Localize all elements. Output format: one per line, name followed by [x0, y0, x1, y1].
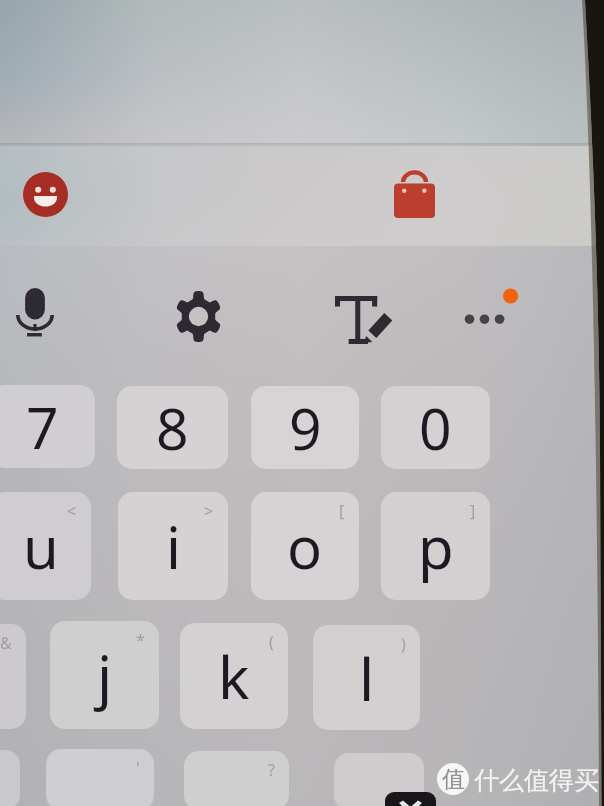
staticText: ) — [401, 633, 406, 655]
button[interactable]: Handwriting — [327, 286, 399, 358]
staticText: & — [0, 632, 12, 654]
staticText: 0 — [419, 389, 452, 467]
button[interactable]: ' — [46, 749, 154, 806]
staticText: l — [359, 638, 375, 718]
button[interactable]: ] — [381, 492, 490, 600]
staticText: u — [23, 507, 59, 586]
button[interactable]: More options — [455, 282, 525, 352]
button[interactable] — [0, 750, 20, 806]
staticText: * — [136, 629, 145, 651]
button[interactable]: 0 — [381, 386, 490, 469]
button[interactable]: [ — [251, 492, 359, 600]
staticText: 9 — [289, 389, 322, 467]
staticText: > — [204, 500, 214, 522]
staticText: 7 — [26, 388, 59, 466]
button[interactable]: ( — [180, 623, 288, 729]
staticText: ? — [268, 759, 275, 781]
staticText: 值 — [442, 765, 465, 794]
button[interactable]: 7 — [0, 385, 95, 468]
staticText: k — [218, 636, 250, 716]
button[interactable]: > — [118, 492, 228, 600]
staticText: ( — [269, 631, 274, 653]
button[interactable]: * — [50, 621, 159, 729]
button[interactable]: & — [0, 624, 26, 729]
button[interactable]: ) — [313, 625, 420, 730]
button[interactable]: Emoji — [15, 164, 76, 225]
staticText: 什么值得买 — [474, 765, 599, 796]
button[interactable]: ? — [184, 751, 289, 806]
button[interactable]: Shopping — [386, 164, 447, 225]
staticText: o — [287, 507, 323, 586]
staticText: p — [418, 507, 454, 586]
staticText: j — [97, 635, 113, 715]
button[interactable]: 8 — [117, 386, 228, 469]
button[interactable]: 9 — [251, 386, 359, 469]
staticText: ' — [136, 757, 140, 779]
staticText: < — [67, 500, 77, 522]
button[interactable]: Voice input — [6, 278, 70, 342]
staticText: ] — [470, 500, 476, 522]
button[interactable]: Shift — [385, 792, 436, 806]
staticText: [ — [339, 500, 345, 522]
staticText: i — [166, 507, 181, 586]
button[interactable]: Settings — [167, 281, 231, 345]
button[interactable] — [334, 753, 424, 806]
staticText: 8 — [156, 389, 189, 467]
button[interactable]: < — [0, 492, 91, 600]
